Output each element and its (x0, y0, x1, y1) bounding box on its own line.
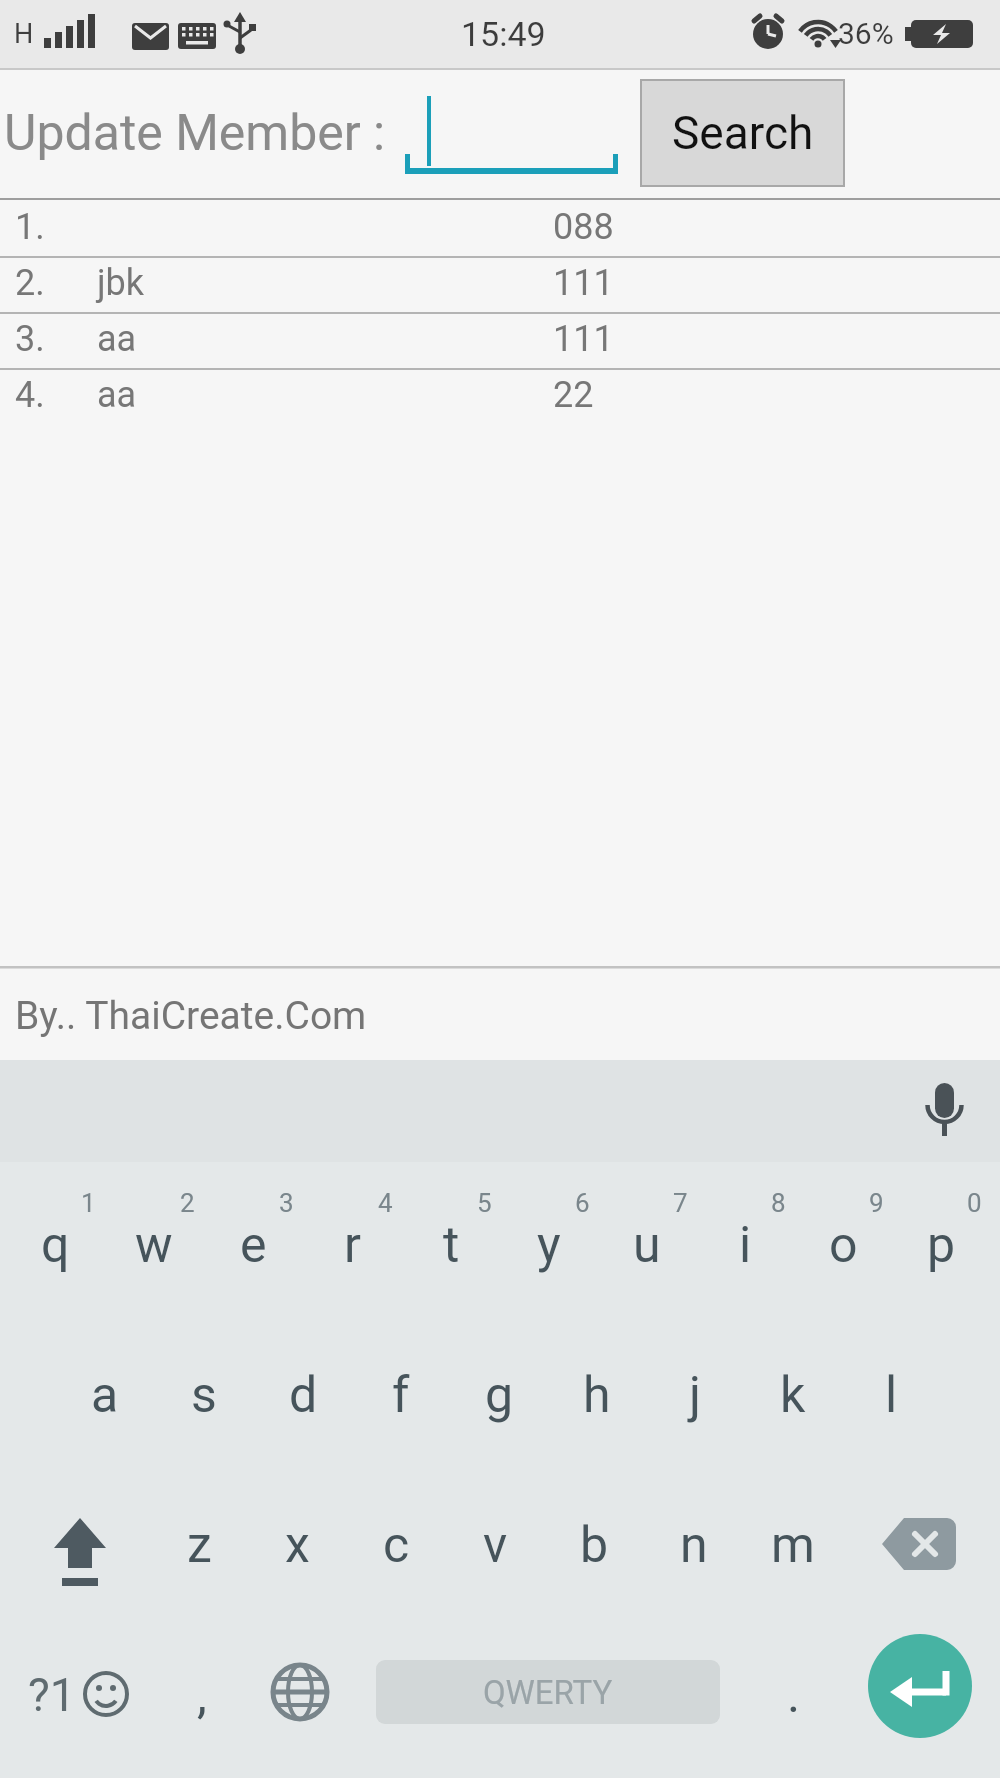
staticText: 6 (575, 1188, 590, 1218)
button[interactable]: e (204, 1170, 302, 1320)
staticText: j (689, 1366, 701, 1425)
staticText: 8 (771, 1188, 786, 1218)
staticText: l (885, 1366, 898, 1425)
button[interactable]: 3. (0, 312, 1000, 366)
button[interactable]: o (794, 1170, 892, 1320)
button[interactable]: w (105, 1170, 203, 1320)
staticText: 15:49 (461, 14, 546, 54)
button[interactable]: t (402, 1170, 500, 1320)
button[interactable] (868, 1634, 972, 1738)
button[interactable]: x (248, 1470, 347, 1620)
button[interactable] (842, 1470, 1000, 1620)
button[interactable]: QWERTY (376, 1660, 720, 1724)
staticText: b (580, 1516, 609, 1575)
staticText: 22 (553, 374, 594, 416)
staticText: k (780, 1366, 806, 1425)
staticText: d (289, 1366, 318, 1425)
staticText: By.. ThaiCreate.Com (15, 993, 367, 1039)
button[interactable]: Search (640, 79, 845, 187)
button[interactable]: i (696, 1170, 794, 1320)
staticText: 36% (838, 16, 894, 51)
staticText: 7 (673, 1188, 688, 1218)
staticText: . (787, 1666, 801, 1725)
button[interactable]: z (150, 1470, 248, 1620)
button[interactable]: f (352, 1320, 450, 1470)
staticText: g (485, 1366, 514, 1425)
button[interactable]: . (762, 1620, 826, 1770)
button[interactable]: 1. (0, 200, 1000, 254)
staticText: 4. (15, 374, 45, 416)
staticText: h (583, 1366, 611, 1425)
staticText: 2. (15, 262, 45, 304)
staticText: H (14, 18, 34, 50)
staticText: t (443, 1216, 460, 1275)
button[interactable] (0, 1470, 150, 1620)
staticText: 1 (81, 1188, 96, 1218)
staticText: s (191, 1366, 217, 1425)
staticText: w (135, 1216, 173, 1275)
button[interactable]: l (842, 1320, 940, 1470)
staticText: v (483, 1516, 508, 1575)
staticText: q (41, 1216, 70, 1275)
button[interactable]: , (170, 1620, 234, 1770)
staticText: , (197, 1666, 207, 1725)
staticText: 3 (279, 1188, 294, 1218)
staticText: c (383, 1516, 410, 1575)
staticText: o (829, 1216, 858, 1275)
staticText: f (392, 1366, 410, 1425)
staticText: r (344, 1216, 361, 1275)
staticText: 9 (869, 1188, 884, 1218)
button[interactable] (262, 1620, 338, 1770)
staticText: i (739, 1216, 752, 1275)
staticText: QWERTY (483, 1673, 613, 1712)
staticText: Update Member : (4, 104, 386, 163)
button[interactable]: s (155, 1320, 253, 1470)
button[interactable]: q (6, 1170, 104, 1320)
button[interactable]: h (548, 1320, 646, 1470)
button[interactable]: 2. (0, 256, 1000, 310)
staticText: 4 (378, 1188, 393, 1218)
button[interactable]: p (892, 1170, 990, 1320)
button[interactable]: c (347, 1470, 446, 1620)
staticText: n (680, 1516, 708, 1575)
staticText: u (633, 1216, 661, 1275)
staticText: aa (97, 374, 137, 416)
staticText: 1. (15, 206, 45, 248)
button[interactable]: v (446, 1470, 545, 1620)
staticText: m (771, 1516, 815, 1575)
button[interactable]: k (744, 1320, 842, 1470)
staticText: e (240, 1216, 267, 1275)
staticText: aa (97, 318, 137, 360)
button[interactable]: n (644, 1470, 743, 1620)
staticText: a (91, 1366, 119, 1425)
staticText: ?1 (28, 1668, 76, 1722)
staticText: p (927, 1216, 956, 1275)
button[interactable]: j (646, 1320, 744, 1470)
button[interactable]: b (545, 1470, 644, 1620)
staticText: 5 (477, 1188, 492, 1218)
button[interactable]: r (303, 1170, 401, 1320)
staticText: y (537, 1216, 561, 1275)
button[interactable]: g (450, 1320, 548, 1470)
staticText: 2 (180, 1188, 195, 1218)
staticText: jbk (97, 262, 145, 304)
button[interactable]: m (743, 1470, 842, 1620)
staticText: 111 (553, 318, 614, 360)
button[interactable]: y (500, 1170, 598, 1320)
button[interactable]: ?1 (0, 1620, 150, 1770)
staticText: 088 (553, 206, 614, 248)
staticText: 0 (967, 1188, 982, 1218)
button[interactable]: u (598, 1170, 696, 1320)
staticText: 111 (553, 262, 614, 304)
staticText: x (285, 1516, 310, 1575)
staticText: Search (672, 106, 814, 160)
staticText: 3. (15, 318, 45, 360)
button[interactable]: 4. (0, 368, 1000, 422)
button[interactable]: d (254, 1320, 352, 1470)
staticText: z (187, 1516, 212, 1575)
button[interactable]: a (56, 1320, 154, 1470)
